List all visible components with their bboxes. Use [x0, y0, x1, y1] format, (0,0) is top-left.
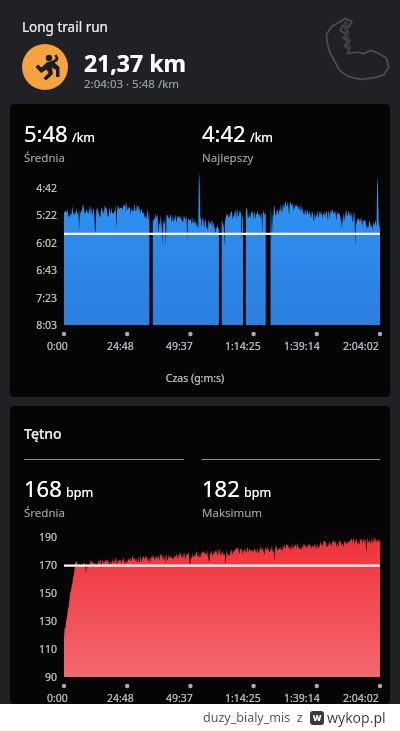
- button[interactable]: Route map: [310, 14, 392, 90]
- staticText: duzy_bialy_mis z: [203, 709, 303, 726]
- staticText: wykop.pl: [327, 708, 386, 727]
- button[interactable]: Tętno: [10, 406, 390, 704]
- staticText: 2:04:02: [343, 691, 379, 704]
- staticText: 90: [24, 670, 57, 684]
- button[interactable]: 182: [202, 459, 380, 521]
- staticText: 49:37: [166, 691, 193, 704]
- staticText: 7:23: [24, 291, 57, 305]
- staticText: Średnia: [24, 505, 65, 521]
- staticText: 2:04:03 · 5:48 /km: [84, 76, 180, 92]
- staticText: Long trail run: [22, 18, 108, 36]
- staticText: W: [313, 712, 322, 724]
- staticText: 5:48: [24, 118, 68, 148]
- staticText: bpm: [244, 484, 272, 501]
- staticText: 182: [202, 473, 240, 503]
- button[interactable]: Running activity: [22, 44, 68, 90]
- button[interactable]: 5:48: [10, 104, 390, 397]
- staticText: Średnia: [24, 150, 65, 166]
- staticText: 190: [24, 530, 57, 544]
- staticText: /km: [250, 129, 274, 146]
- staticText: /km: [72, 129, 96, 146]
- staticText: 49:37: [166, 339, 193, 353]
- staticText: Czas (g:m:s): [24, 371, 366, 385]
- staticText: 4:42: [202, 118, 246, 148]
- staticText: Maksimum: [202, 505, 263, 521]
- button[interactable]: 5:48: [24, 118, 184, 166]
- staticText: 24:48: [107, 339, 134, 353]
- staticText: 6:43: [24, 263, 57, 277]
- staticText: 0:00: [47, 691, 68, 704]
- staticText: 150: [24, 586, 57, 600]
- button[interactable]: 168: [24, 459, 184, 521]
- staticText: 168: [24, 473, 62, 503]
- staticText: 24:48: [107, 691, 134, 704]
- staticText: 4:42: [24, 181, 57, 195]
- staticText: Najlepszy: [202, 150, 254, 166]
- staticText: 5:22: [24, 208, 57, 222]
- staticText: 110: [24, 642, 57, 656]
- staticText: 1:39:14: [284, 339, 320, 353]
- staticText: bpm: [66, 484, 94, 501]
- button[interactable]: 4:42: [202, 118, 380, 166]
- staticText: 0:00: [47, 339, 68, 353]
- staticText: 1:14:25: [225, 691, 261, 704]
- staticText: 130: [24, 614, 57, 628]
- staticText: 2:04:02: [343, 339, 379, 353]
- staticText: 1:14:25: [225, 339, 261, 353]
- staticText: 6:02: [24, 236, 57, 250]
- staticText: Tętno: [24, 424, 62, 443]
- staticText: 8:03: [24, 318, 57, 332]
- staticText: 1:39:14: [284, 691, 320, 704]
- staticText: 170: [24, 558, 57, 572]
- staticText: 21,37 km: [84, 47, 186, 78]
